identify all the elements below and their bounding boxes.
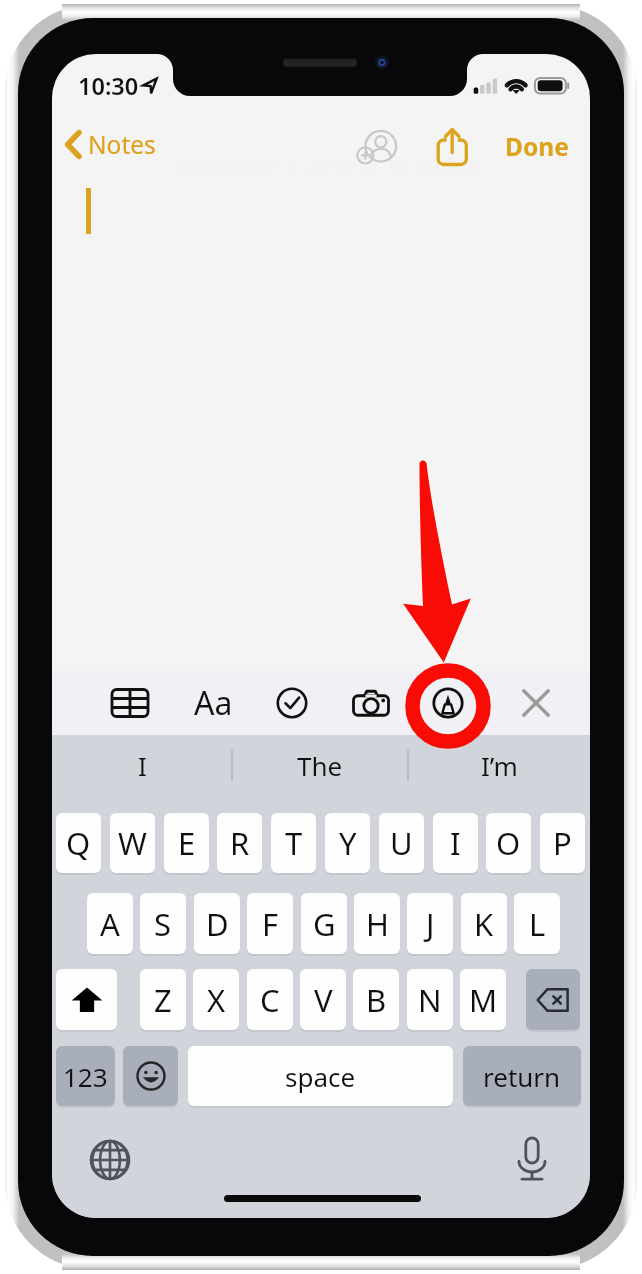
staticText: C — [260, 979, 280, 1021]
staticText: space — [285, 1059, 356, 1094]
staticText: 123 — [63, 1059, 108, 1094]
button[interactable]: Dictation — [508, 1132, 556, 1184]
staticText: T — [285, 822, 303, 864]
button[interactable]: H — [354, 893, 400, 954]
staticText: H — [366, 903, 389, 945]
button[interactable]: Backspace — [526, 969, 580, 1030]
staticText: M — [469, 979, 498, 1021]
staticText: D — [206, 903, 229, 945]
button[interactable]: T — [271, 813, 316, 873]
button[interactable]: F — [247, 893, 293, 954]
staticText: Aa — [194, 681, 233, 725]
staticText: A — [100, 903, 120, 945]
staticText: S — [154, 903, 172, 945]
button[interactable]: P — [540, 813, 585, 873]
button[interactable]: Share — [428, 122, 476, 170]
button[interactable]: Z — [140, 969, 186, 1030]
button[interactable]: W — [110, 813, 155, 873]
button[interactable]: Y — [325, 813, 370, 873]
button[interactable]: I — [52, 735, 232, 796]
staticText: Y — [339, 822, 357, 864]
staticText: K — [474, 903, 494, 945]
button[interactable]: E — [164, 813, 209, 873]
button[interactable]: I — [433, 813, 478, 873]
staticText: G — [313, 903, 336, 945]
button[interactable]: L — [514, 893, 560, 954]
button[interactable]: J — [407, 893, 453, 954]
staticText: Z — [154, 979, 172, 1021]
button[interactable]: M — [460, 969, 506, 1030]
button[interactable]: Table — [104, 677, 156, 729]
staticText: I’m — [481, 748, 518, 783]
staticText: Q — [66, 822, 91, 864]
staticText: Notes — [88, 128, 156, 161]
button[interactable]: return — [463, 1046, 581, 1106]
button[interactable]: Markup — [422, 677, 474, 729]
staticText: F — [262, 903, 279, 945]
button[interactable]: Close — [510, 677, 562, 729]
staticText: R — [230, 822, 250, 864]
button[interactable]: R — [217, 813, 262, 873]
staticText: P — [553, 822, 572, 864]
button[interactable]: The — [232, 735, 408, 796]
staticText: U — [390, 822, 413, 864]
button[interactable]: G — [301, 893, 347, 954]
button[interactable]: I’m — [408, 735, 590, 796]
button[interactable]: space — [188, 1046, 453, 1106]
button[interactable]: N — [407, 969, 453, 1030]
button[interactable]: A — [87, 893, 133, 954]
staticText: return — [483, 1059, 561, 1094]
staticText: V — [314, 979, 333, 1021]
button[interactable]: Q — [56, 813, 101, 873]
button[interactable]: S — [140, 893, 186, 954]
staticText: E — [178, 822, 196, 864]
button[interactable]: Notes — [63, 128, 156, 161]
staticText: O — [496, 822, 521, 864]
staticText: W — [118, 822, 147, 864]
button[interactable]: Format — [187, 677, 239, 729]
button[interactable]: Numbers — [56, 1046, 115, 1106]
staticText: I — [450, 822, 461, 864]
staticText: Done — [505, 130, 569, 163]
button[interactable]: K — [461, 893, 507, 954]
staticText: 10:30 — [78, 70, 139, 102]
staticText: J — [426, 903, 435, 945]
staticText: N — [418, 979, 442, 1021]
button[interactable]: Camera — [345, 677, 397, 729]
button[interactable]: U — [379, 813, 424, 873]
button[interactable]: Done — [505, 130, 569, 163]
staticText: December 3, 2019 at 10:30 AM — [176, 153, 477, 182]
button[interactable]: Add people — [353, 122, 401, 170]
button[interactable]: V — [300, 969, 346, 1030]
button[interactable]: C — [247, 969, 293, 1030]
staticText: I — [138, 748, 147, 783]
button[interactable]: X — [193, 969, 239, 1030]
staticText: X — [207, 979, 226, 1021]
staticText: L — [529, 903, 546, 945]
button[interactable]: Checklist — [266, 677, 318, 729]
button[interactable]: Change keyboard — [84, 1134, 136, 1186]
button[interactable]: Emoji — [123, 1046, 178, 1106]
button[interactable]: B — [353, 969, 399, 1030]
button[interactable]: Shift — [56, 969, 117, 1030]
button[interactable]: O — [486, 813, 531, 873]
button[interactable]: D — [194, 893, 240, 954]
staticText: B — [366, 979, 387, 1021]
staticText: The — [297, 748, 343, 783]
